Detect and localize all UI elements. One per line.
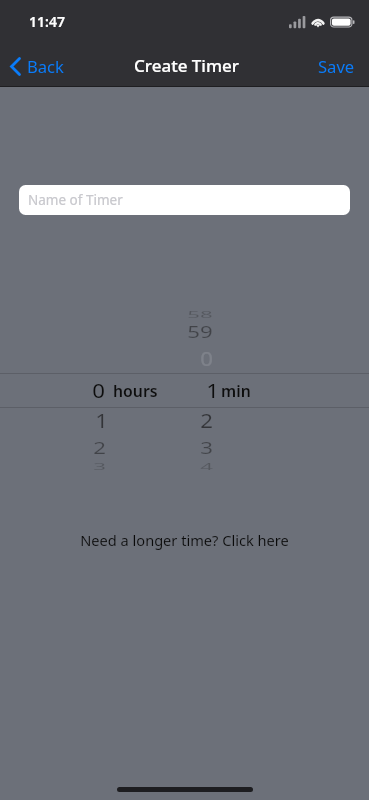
staticText: min <box>221 380 251 402</box>
button[interactable]: Back <box>4 52 72 80</box>
staticText: 2 <box>93 437 106 459</box>
staticText: 4 <box>200 459 213 472</box>
button[interactable]: Save <box>302 52 369 80</box>
staticText: Create Timer <box>134 54 240 77</box>
staticText: 2 <box>200 408 213 434</box>
staticText: Back <box>27 55 64 78</box>
staticText: 11:47 <box>29 12 65 31</box>
button[interactable]: Name of Timer <box>19 185 350 215</box>
staticText: 3 <box>200 437 213 459</box>
staticText: Name of Timer <box>28 191 123 209</box>
staticText: 59 <box>187 321 213 343</box>
staticText: 1 <box>206 378 219 404</box>
button[interactable] <box>0 373 369 407</box>
staticText: 0 <box>92 378 105 404</box>
staticText: 3 <box>93 459 106 472</box>
staticText: hours <box>113 380 158 402</box>
staticText: 1 <box>95 408 108 434</box>
staticText: 0 <box>200 346 213 372</box>
staticText: Need a longer time? Click here <box>80 530 289 550</box>
staticText: 58 <box>187 307 213 320</box>
staticText: Save <box>318 55 355 78</box>
button[interactable]: Need a longer time? Click here <box>0 528 369 552</box>
